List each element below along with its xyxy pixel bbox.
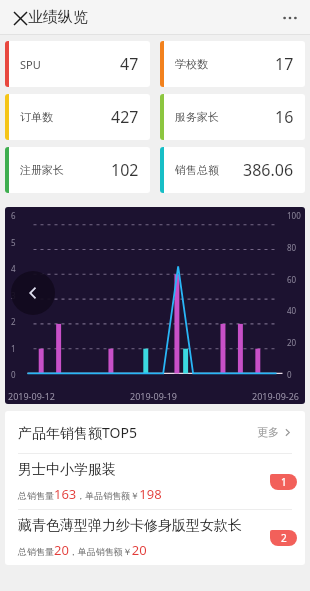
staticText: 藏青色薄型弹力纱卡修身版型女款长裤 [18, 517, 255, 535]
staticText: 17 [275, 53, 294, 75]
staticText: 2019-09-19 [130, 390, 177, 402]
staticText: 100 [287, 210, 301, 221]
staticText: 5 [11, 237, 16, 248]
button[interactable]: 产品年销售额TOP5 [5, 411, 305, 453]
staticText: 男士中小学服装 [18, 461, 116, 479]
button[interactable]: 学校数 [160, 41, 305, 87]
staticText: 6 [11, 210, 16, 221]
staticText: 3 [11, 290, 16, 301]
staticText: 20 [287, 337, 297, 348]
staticText: 1 [11, 343, 16, 354]
staticText: SPU [20, 57, 41, 72]
button[interactable]: 销售总额 [160, 147, 305, 193]
button[interactable]: 藏青色薄型弹力纱卡修身版型女款长裤 [5, 510, 305, 565]
staticText: 2 [281, 531, 287, 545]
staticText: 2019-09-26 [252, 390, 299, 402]
staticText: 60 [287, 274, 297, 285]
staticText: 注册家长 [20, 163, 64, 177]
staticText: 产品年销售额TOP5 [18, 423, 137, 442]
staticText: 386.06 [243, 159, 294, 181]
button[interactable]: 男士中小学服装 [5, 454, 305, 509]
staticText: 服务家长 [175, 110, 219, 124]
staticText: 40 [287, 305, 297, 316]
staticText: 427 [111, 106, 139, 128]
staticText: 47 [120, 53, 139, 75]
button[interactable]: More options [276, 4, 304, 32]
staticText: 2019-09-12 [8, 390, 55, 402]
staticText: 业绩纵览 [28, 8, 88, 27]
staticText: 2 [11, 316, 16, 327]
staticText: 0 [11, 369, 16, 380]
staticText: 4 [11, 263, 16, 274]
staticText: 总销售量20，单品销售额￥20 [18, 541, 147, 559]
button[interactable]: 注册家长 [5, 147, 150, 193]
staticText: 订单数 [20, 110, 53, 124]
staticText: 102 [111, 159, 139, 181]
staticText: 0 [287, 369, 292, 380]
button[interactable]: Close [6, 4, 34, 32]
staticText: 总销售量163，单品销售额￥198 [18, 485, 162, 503]
staticText: 16 [275, 106, 294, 128]
button[interactable]: 服务家长 [160, 94, 305, 140]
button[interactable]: 订单数 [5, 94, 150, 140]
staticText: 80 [287, 242, 297, 253]
staticText: 更多 [257, 425, 279, 439]
button[interactable]: Previous [11, 271, 55, 315]
button[interactable]: SPU [5, 41, 150, 87]
staticText: 销售总额 [175, 163, 219, 177]
staticText: 1 [281, 475, 287, 489]
staticText: 学校数 [175, 57, 208, 71]
